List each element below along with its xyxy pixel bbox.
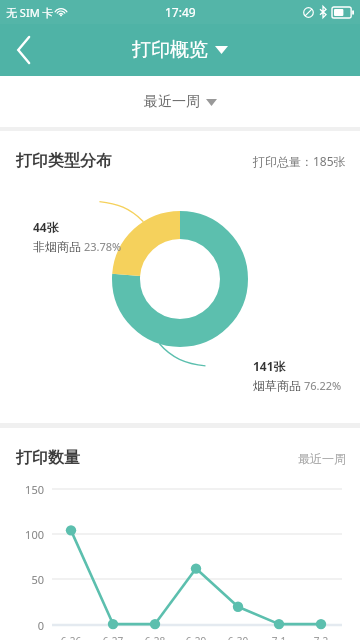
button[interactable]: Back [0,26,48,74]
staticText: 50 [0,572,44,587]
staticText: 141张 [253,358,286,374]
staticText: 0 [0,618,44,633]
staticText: 44张 [33,219,59,235]
staticText: 非烟商品 [33,239,81,254]
button[interactable]: 打印概览 [132,38,228,62]
staticText: 6-26 [56,634,86,640]
staticText: 150 [0,482,44,497]
staticText: 打印概览 [132,38,208,62]
staticText: 最近一周 [298,451,346,466]
staticText: 6-29 [181,634,211,640]
staticText: 最近一周 [144,93,200,111]
staticText: 17:49 [165,4,196,20]
staticText: 7-1 [264,634,294,640]
staticText: 100 [0,527,44,542]
staticText: 76.22% [304,378,342,393]
staticText: 6-27 [98,634,128,640]
staticText: 打印数量 [16,448,80,468]
staticText: 打印类型分布 [16,151,112,171]
staticText: 6-28 [140,634,170,640]
staticText: 烟草商品 [253,378,301,393]
staticText: 打印总量：185张 [253,153,346,169]
staticText: 7-2 [306,634,336,640]
staticText: 6-30 [223,634,253,640]
button[interactable]: 最近一周 [134,87,227,117]
staticText: 无 SIM 卡 [6,5,54,20]
staticText: 23.78% [84,239,122,254]
